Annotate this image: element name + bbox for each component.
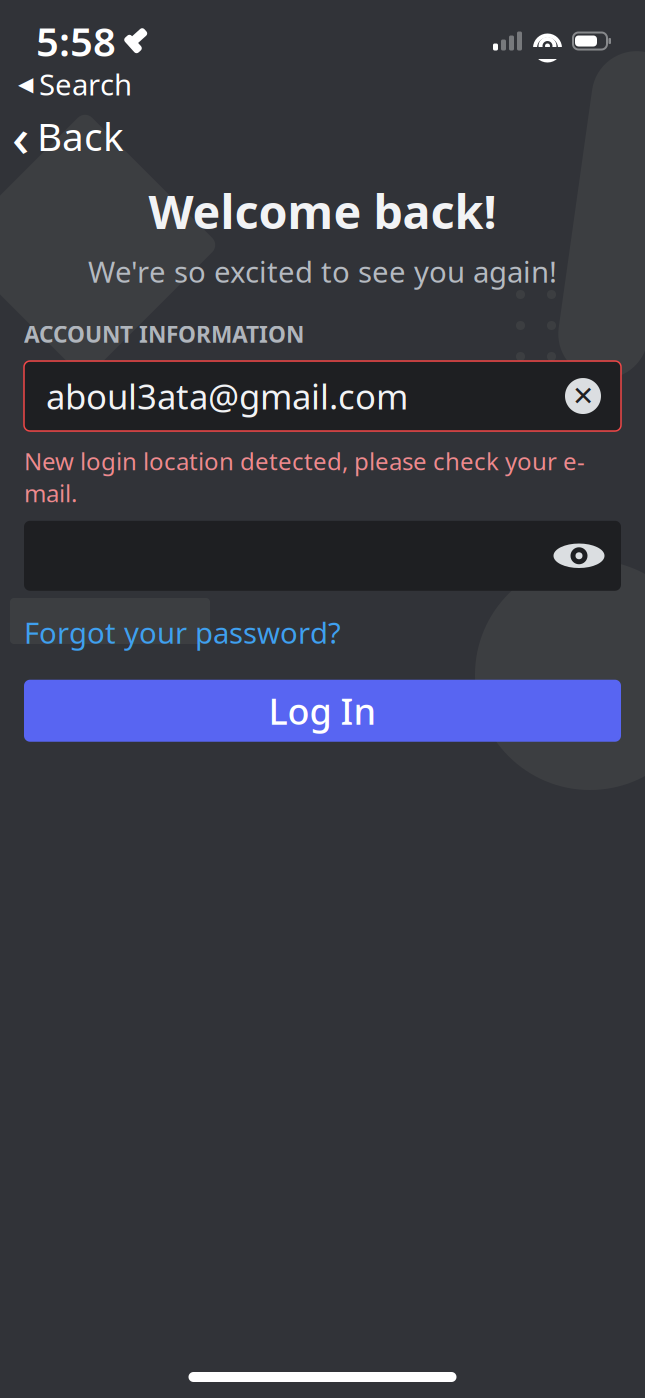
staticText: ‹ xyxy=(12,101,29,171)
staticText: Log In xyxy=(268,687,376,735)
staticText: Forgot your password? xyxy=(24,613,341,652)
button[interactable]: Log In xyxy=(24,680,621,742)
staticText: New login location detected, please chec… xyxy=(24,445,585,509)
button[interactable]: ◀ xyxy=(0,62,132,105)
staticText: Search xyxy=(39,64,132,103)
staticText: Back xyxy=(37,110,124,162)
button[interactable]: ‹ xyxy=(0,95,124,177)
staticText: aboul3ata@gmail.com xyxy=(46,373,408,419)
staticText: Welcome back! xyxy=(148,180,496,242)
button[interactable]: Clear text xyxy=(565,370,621,422)
staticText: ACCOUNT INFORMATION xyxy=(24,319,304,349)
button[interactable]: Forgot your password? xyxy=(24,607,341,658)
staticText: We're so excited to see you again! xyxy=(88,252,557,291)
staticText: 5:58 xyxy=(36,14,116,67)
button[interactable]: Show password xyxy=(557,532,621,580)
staticText: ◀ xyxy=(18,73,33,95)
staticText: ✕ xyxy=(572,381,594,411)
